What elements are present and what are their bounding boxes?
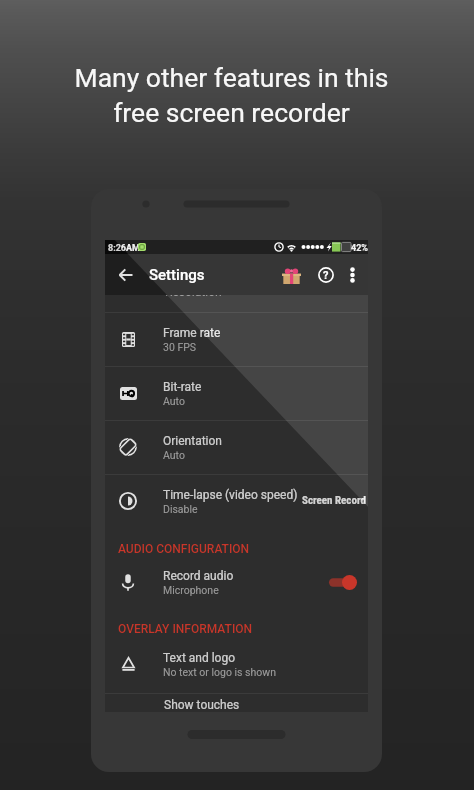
staticText: OVERLAY INFORMATION [118, 622, 253, 636]
staticText: Microphone [163, 584, 219, 596]
button[interactable]: More options [340, 254, 365, 295]
staticText: Many other features in this [74, 62, 389, 93]
button[interactable]: Bit-rate [105, 366, 368, 420]
staticText: Time-lapse (video speed) [163, 488, 298, 502]
staticText: Text and logo [163, 651, 236, 665]
staticText: Show touches [164, 698, 240, 712]
button[interactable]: Help [311, 254, 340, 295]
staticText: Frame rate [163, 326, 221, 340]
button[interactable]: Frame rate [105, 312, 368, 366]
button[interactable]: Gift [275, 254, 307, 295]
button[interactable]: Text and logo [105, 637, 368, 691]
staticText: free screen recorder [113, 97, 350, 128]
staticText: Auto [163, 395, 185, 407]
staticText: Screen Record [302, 494, 366, 507]
button[interactable]: Record audio toggle [318, 555, 368, 609]
staticText: Disable [163, 503, 198, 515]
button[interactable]: Back [108, 254, 142, 295]
staticText: 42% [351, 243, 368, 254]
staticText: No text or logo is shown [163, 666, 276, 678]
button[interactable]: Orientation [105, 420, 368, 474]
staticText: Orientation [163, 434, 222, 448]
button[interactable]: Record audio [105, 555, 368, 609]
staticText: Bit-rate [163, 380, 202, 394]
button[interactable]: Settings [149, 254, 205, 295]
staticText: Record audio [163, 569, 234, 583]
staticText: ? [323, 269, 329, 282]
button[interactable]: OVERLAY INFORMATION [105, 617, 368, 641]
staticText: Resolution [165, 285, 222, 299]
staticText: Settings [149, 266, 205, 284]
staticText: 30 FPS [163, 341, 197, 353]
staticText: Auto [163, 449, 185, 461]
staticText: AUDIO CONFIGURATION [118, 542, 250, 556]
staticText: 8:26AM [108, 243, 140, 254]
button[interactable]: Time-lapse (video speed) [105, 474, 368, 528]
button[interactable]: AUDIO CONFIGURATION [105, 537, 368, 561]
